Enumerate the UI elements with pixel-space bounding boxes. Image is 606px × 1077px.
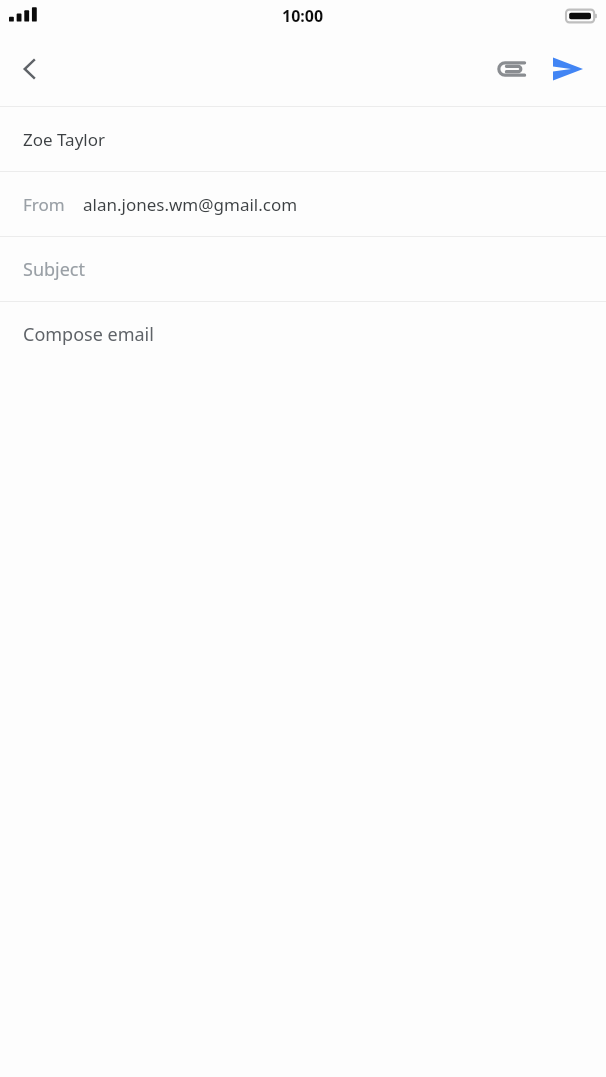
- button[interactable]: Attach file: [486, 43, 538, 95]
- button[interactable]: Back: [6, 45, 54, 93]
- staticText: 10:00: [282, 5, 324, 27]
- staticText: From: [23, 193, 65, 216]
- staticText: Zoe Taylor: [23, 128, 106, 151]
- button[interactable]: From: [0, 172, 606, 236]
- button[interactable]: Send: [542, 43, 594, 95]
- button[interactable]: Subject: [0, 237, 606, 301]
- staticText: Subject: [23, 257, 86, 282]
- button[interactable]: Zoe Taylor: [0, 107, 606, 171]
- staticText: alan.jones.wm@gmail.com: [83, 193, 298, 216]
- button[interactable]: Compose email: [0, 302, 606, 1077]
- staticText: Compose email: [23, 322, 154, 347]
